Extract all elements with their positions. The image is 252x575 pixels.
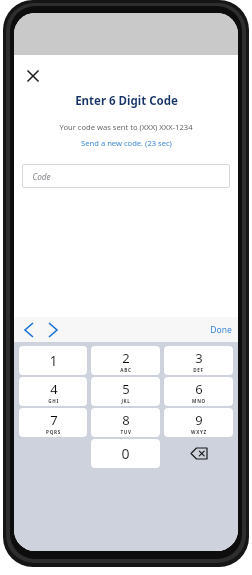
button[interactable]: 0 xyxy=(91,439,160,468)
staticText: 9 xyxy=(195,411,203,429)
staticText: WXYZ xyxy=(191,429,207,435)
staticText: Send a new code. (23 sec) xyxy=(81,138,172,148)
button[interactable]: 4 xyxy=(19,377,87,406)
button[interactable]: Backspace xyxy=(164,439,233,468)
button[interactable]: Next field xyxy=(42,317,64,342)
staticText: Your code was sent to (XXX) XXX-1234 xyxy=(59,122,193,132)
button[interactable]: Send a new code. (23 sec) xyxy=(81,138,172,148)
button[interactable]: 6 xyxy=(164,377,233,406)
staticText: 1 xyxy=(49,351,58,370)
button[interactable]: 7 xyxy=(19,408,87,437)
button[interactable]: 1 xyxy=(19,346,87,375)
staticText: 7 xyxy=(50,411,58,429)
staticText: GHI xyxy=(48,398,59,404)
button[interactable]: 5 xyxy=(91,377,160,406)
button[interactable]: 3 xyxy=(164,346,233,375)
staticText: 8 xyxy=(122,411,130,429)
button[interactable]: 8 xyxy=(91,408,160,437)
staticText: ABC xyxy=(120,367,132,373)
staticText: 6 xyxy=(195,380,203,398)
button[interactable]: Done xyxy=(206,320,236,340)
staticText: Done xyxy=(210,324,232,336)
button[interactable]: Close xyxy=(18,61,48,91)
staticText: TUV xyxy=(120,429,132,435)
staticText: 3 xyxy=(195,349,203,367)
staticText: MNO xyxy=(192,398,206,404)
staticText: 4 xyxy=(50,380,58,398)
staticText: JKL xyxy=(121,398,131,404)
staticText: 5 xyxy=(122,380,130,398)
button[interactable]: Code xyxy=(22,164,230,188)
staticText: PQRS xyxy=(46,429,61,435)
button[interactable]: 9 xyxy=(164,408,233,437)
button[interactable]: 2 xyxy=(91,346,160,375)
staticText: 2 xyxy=(122,349,130,367)
staticText: Code xyxy=(32,171,51,182)
staticText: 0 xyxy=(121,444,130,463)
staticText: DEF xyxy=(193,367,204,373)
staticText: Enter 6 Digit Code xyxy=(75,93,178,109)
button[interactable]: Previous field xyxy=(18,317,40,342)
